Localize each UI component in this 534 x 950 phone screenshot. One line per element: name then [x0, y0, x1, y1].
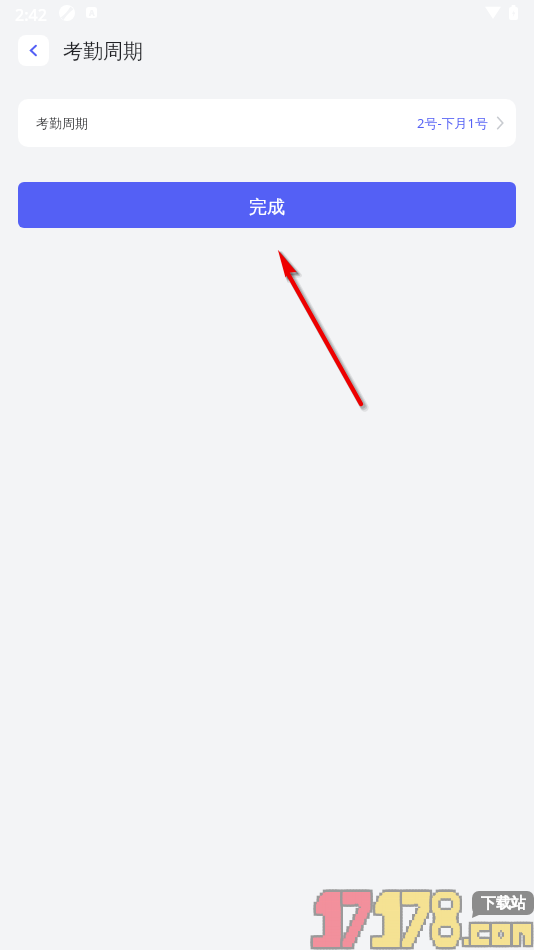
- staticText: 考勤周期: [36, 115, 88, 131]
- staticText: 2:42: [15, 4, 47, 26]
- staticText: 考勤周期: [63, 39, 143, 64]
- staticText: 2号-下月1号: [417, 114, 489, 132]
- staticText: 下载站: [481, 894, 526, 913]
- staticText: A: [89, 7, 95, 18]
- staticText: 完成: [249, 196, 285, 219]
- button[interactable]: 考勤周期: [18, 99, 516, 147]
- button[interactable]: Back: [18, 35, 49, 66]
- button[interactable]: 完成: [18, 182, 516, 228]
